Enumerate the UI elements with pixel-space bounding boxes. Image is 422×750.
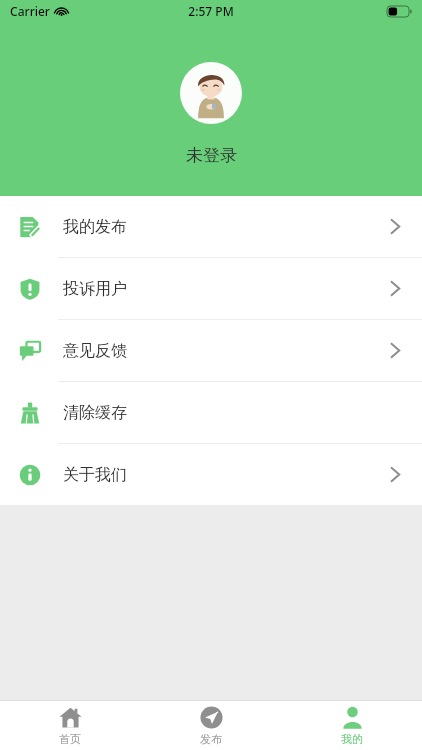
button[interactable]: 我的发布 (0, 196, 422, 258)
staticText: 未登录 (186, 145, 237, 166)
button[interactable]: 意见反馈 (0, 320, 422, 382)
staticText: Carrier (10, 3, 50, 19)
button[interactable]: 我的 (281, 701, 422, 750)
staticText: 发布 (200, 732, 222, 746)
button[interactable]: 清除缓存 (0, 382, 422, 444)
button[interactable]: 发布 (140, 701, 281, 750)
button[interactable]: 首页 (0, 701, 140, 750)
staticText: 清除缓存 (63, 403, 127, 423)
button[interactable] (180, 62, 242, 124)
staticText: 首页 (59, 732, 81, 746)
staticText: 投诉用户 (63, 279, 127, 299)
staticText: 关于我们 (63, 465, 127, 485)
staticText: 意见反馈 (63, 341, 127, 361)
staticText: 我的 (341, 732, 363, 746)
button[interactable]: 关于我们 (0, 444, 422, 505)
staticText: 2:57 PM (188, 3, 234, 19)
staticText: 我的发布 (63, 217, 127, 237)
button[interactable]: 投诉用户 (0, 258, 422, 320)
